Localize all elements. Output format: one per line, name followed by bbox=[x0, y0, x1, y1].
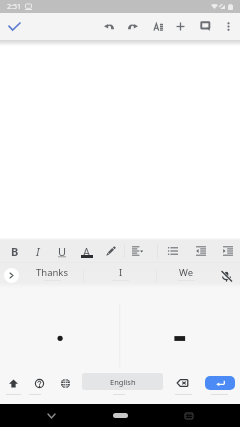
button[interactable]: More options bbox=[217, 14, 239, 39]
button[interactable]: Highlight colour bbox=[100, 239, 122, 263]
staticText: English bbox=[110, 377, 136, 387]
button[interactable]: Shift bbox=[2, 372, 24, 394]
button[interactable]: Undo bbox=[98, 14, 120, 39]
button[interactable]: Decrease indent bbox=[190, 239, 212, 263]
button[interactable]: Comments bbox=[194, 14, 216, 39]
button[interactable]: Backspace bbox=[171, 372, 193, 394]
staticText: 2:51 bbox=[7, 2, 21, 12]
button[interactable]: Enter bbox=[205, 376, 235, 390]
button[interactable]: Change language bbox=[54, 372, 76, 394]
button[interactable]: Voice input disabled bbox=[216, 266, 236, 286]
staticText: U bbox=[58, 244, 67, 259]
staticText: We bbox=[179, 266, 194, 279]
button[interactable]: We bbox=[157, 263, 216, 288]
button[interactable]: I bbox=[84, 263, 156, 288]
button[interactable]: Show toolbar bbox=[4, 268, 19, 283]
button[interactable]: Hide keyboard bbox=[41, 406, 61, 426]
button[interactable]: Thanks bbox=[21, 263, 83, 288]
staticText: I bbox=[119, 266, 123, 279]
button[interactable]: Bulleted list bbox=[162, 239, 184, 263]
button[interactable]: Help bbox=[28, 372, 50, 394]
staticText: Thanks bbox=[36, 266, 68, 279]
button[interactable]: Increase indent bbox=[217, 239, 239, 263]
button[interactable]: Bold bbox=[4, 239, 26, 263]
button[interactable]: Italic bbox=[27, 239, 49, 263]
button[interactable]: Text formatting bbox=[147, 14, 169, 39]
button[interactable]: Insert bbox=[169, 14, 191, 39]
staticText: A bbox=[83, 244, 91, 259]
button[interactable]: Paragraph alignment bbox=[126, 239, 148, 263]
button[interactable]: Switch input method bbox=[179, 406, 199, 426]
button[interactable]: Text colour bbox=[76, 238, 98, 263]
button[interactable]: Redo bbox=[122, 14, 144, 39]
staticText: B bbox=[11, 244, 19, 259]
button[interactable]: Underline bbox=[51, 239, 73, 263]
button[interactable]: Home bbox=[113, 413, 128, 418]
staticText: I bbox=[36, 244, 40, 259]
button[interactable]: Done bbox=[3, 15, 26, 38]
button[interactable]: English bbox=[82, 373, 163, 390]
